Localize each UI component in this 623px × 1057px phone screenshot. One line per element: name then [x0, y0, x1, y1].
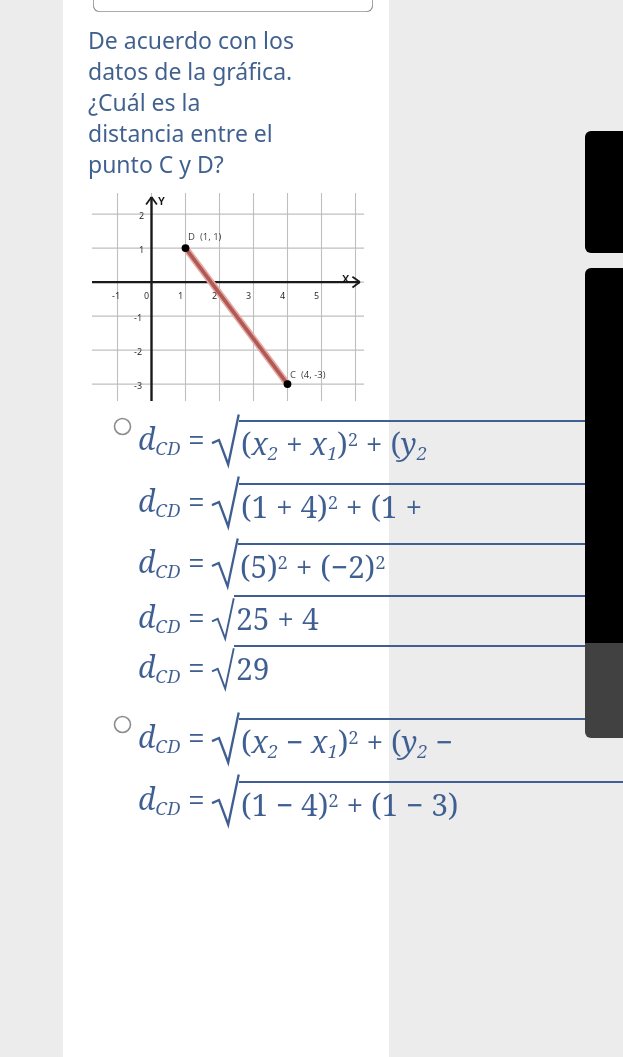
staticText: =	[188, 717, 205, 758]
staticText: (x2 + x1)2 + (y2	[241, 423, 428, 465]
staticText: -3	[134, 379, 143, 391]
staticText: C (4, -3)	[290, 368, 326, 381]
staticText: -2	[134, 345, 143, 357]
staticText: 29	[236, 648, 270, 689]
staticText: dCD	[138, 418, 181, 460]
button[interactable]: Panel item	[585, 268, 623, 738]
staticText: -1	[112, 289, 121, 301]
staticText: 2	[139, 209, 145, 221]
staticText: 2	[212, 289, 218, 301]
staticText: 0	[144, 289, 150, 301]
staticText: datos de la gráfica.	[88, 55, 293, 86]
staticText: distancia entre el	[88, 117, 273, 148]
staticText: 5	[314, 289, 320, 301]
staticText: dCD	[138, 778, 181, 820]
staticText: dCD	[138, 596, 181, 638]
staticText: =	[188, 779, 205, 820]
button[interactable]: Panel item	[585, 131, 623, 253]
staticText: 4	[280, 289, 286, 301]
staticText: dCD	[138, 541, 181, 583]
staticText: (1 − 4)2 + (1 − 3)	[241, 784, 459, 825]
button[interactable]: Select answer option	[113, 417, 132, 436]
button[interactable]	[93, 0, 373, 12]
staticText: punto C y D?	[88, 148, 224, 179]
staticText: dCD	[138, 646, 181, 688]
staticText: X	[342, 271, 350, 286]
staticText: dCD	[138, 716, 181, 758]
staticText: 1	[178, 289, 184, 301]
button[interactable]: Select answer option	[113, 715, 132, 734]
staticText: =	[188, 597, 205, 638]
staticText: 25 + 4	[236, 598, 319, 639]
staticText: =	[188, 419, 205, 460]
staticText: ¿Cuál es la	[88, 86, 201, 117]
staticText: D (1, 1)	[188, 230, 222, 243]
staticText: dCD	[138, 480, 181, 522]
staticText: De acuerdo con los	[88, 24, 294, 55]
staticText: Y	[158, 193, 165, 208]
staticText: =	[188, 647, 205, 688]
staticText: =	[188, 481, 205, 522]
staticText: (1 + 4)2 + (1 +	[241, 486, 423, 527]
staticText: (5)2 + (−2)2	[240, 546, 386, 587]
staticText: =	[188, 542, 205, 583]
staticText: 1	[139, 243, 145, 255]
staticText: -1	[134, 311, 143, 323]
staticText: 3	[246, 289, 252, 301]
staticText: (x2 − x1)2 + (y2 −	[241, 721, 453, 763]
